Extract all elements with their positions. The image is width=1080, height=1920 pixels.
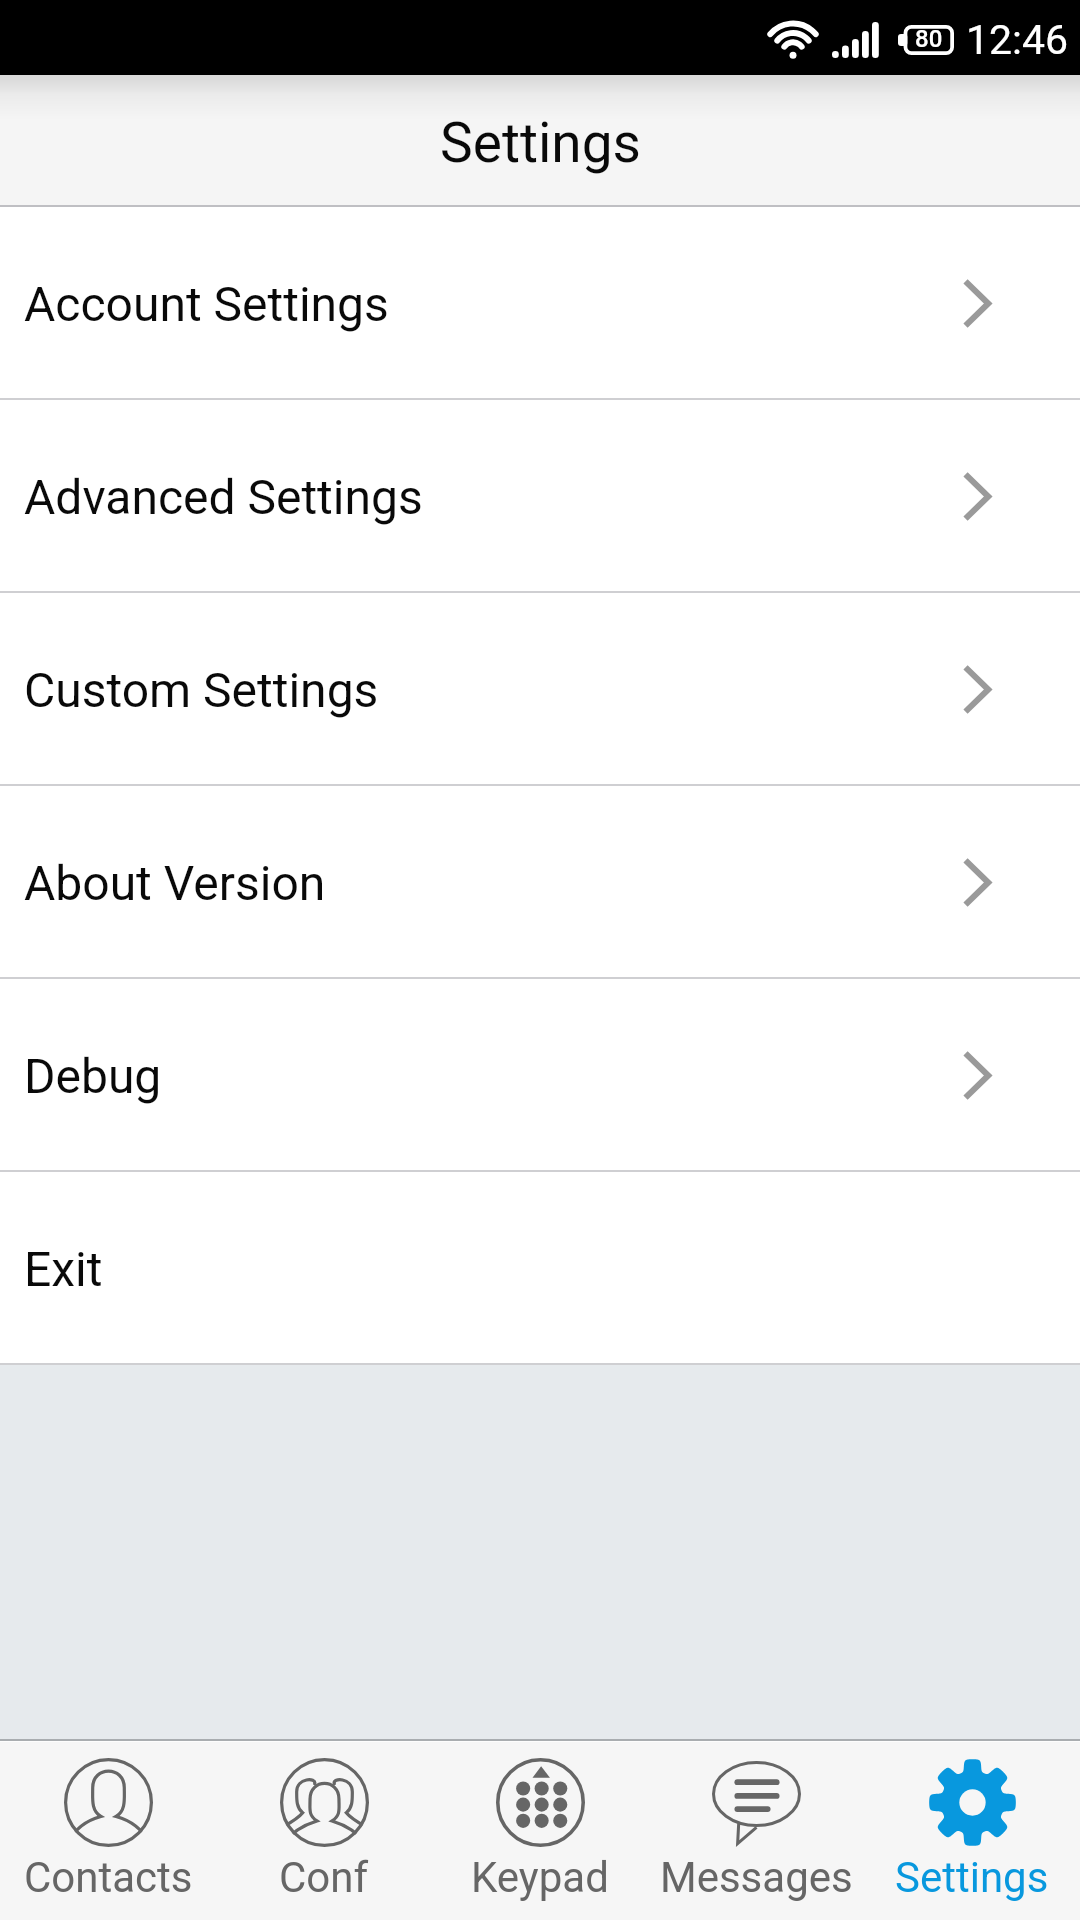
button[interactable]: Contacts — [0, 1742, 216, 1920]
other: Open Advanced Settings — [963, 471, 992, 522]
button[interactable]: About Version — [0, 786, 1080, 979]
staticText: Exit — [24, 1241, 103, 1297]
staticText: Settings — [895, 1853, 1049, 1902]
staticText: Keypad — [471, 1853, 609, 1902]
button[interactable]: Settings — [864, 1742, 1080, 1920]
button[interactable]: Advanced Settings — [0, 400, 1080, 593]
other: Open Custom Settings — [963, 664, 992, 715]
staticText: About Version — [24, 855, 326, 911]
button[interactable]: Account Settings — [0, 207, 1080, 400]
staticText: Advanced Settings — [24, 469, 423, 525]
staticText: Account Settings — [24, 276, 389, 332]
staticText: 12:46 — [966, 16, 1069, 64]
other: Open Account Settings — [963, 278, 992, 329]
button[interactable]: Exit — [0, 1172, 1080, 1365]
button[interactable]: Debug — [0, 979, 1080, 1172]
button[interactable]: Keypad — [432, 1742, 648, 1920]
staticText: 80 — [915, 25, 943, 53]
staticText: Contacts — [24, 1853, 193, 1902]
button[interactable]: Custom Settings — [0, 593, 1080, 786]
other: Open Debug — [963, 1050, 992, 1101]
staticText: Debug — [24, 1048, 162, 1104]
staticText: Conf — [279, 1853, 369, 1902]
button[interactable]: Messages — [648, 1742, 864, 1920]
staticText: Custom Settings — [24, 662, 379, 718]
staticText: Settings — [440, 111, 641, 175]
other: Open About Version — [963, 857, 992, 908]
button[interactable]: Conf — [216, 1742, 432, 1920]
staticText: Messages — [660, 1853, 853, 1902]
